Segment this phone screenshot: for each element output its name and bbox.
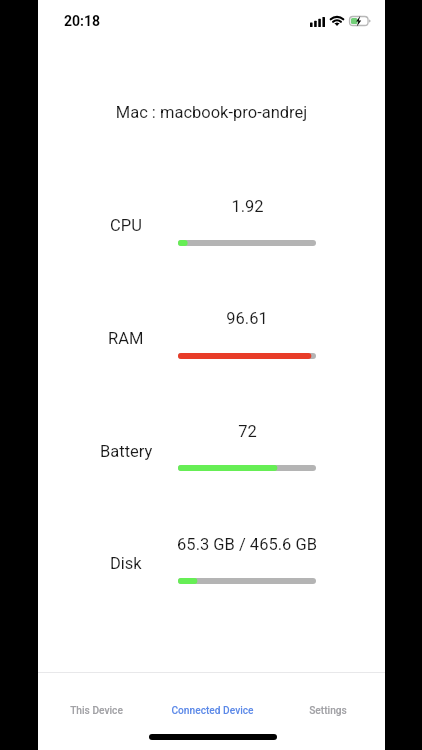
staticText: 1.92 (231, 197, 264, 216)
button[interactable] (38, 515, 385, 605)
other: Battery charging (349, 16, 371, 26)
staticText: 96.61 (226, 309, 268, 328)
other: Wi-Fi connected (330, 16, 344, 26)
staticText: 72 (238, 422, 257, 441)
staticText: This Device (70, 705, 123, 717)
staticText: CPU (110, 216, 142, 235)
button[interactable] (38, 402, 385, 492)
staticText: Settings (309, 705, 347, 717)
staticText: Mac : macbook-pro-andrej (38, 103, 385, 122)
button[interactable] (38, 177, 385, 267)
staticText: RAM (108, 329, 144, 348)
button[interactable]: Settings (270, 673, 386, 729)
button[interactable]: This Device (39, 673, 154, 729)
other: Cellular signal strength (310, 17, 325, 27)
staticText: Battery (100, 442, 153, 461)
staticText: Connected Device (171, 705, 254, 717)
staticText: 65.3 GB / 465.6 GB (177, 535, 317, 554)
staticText: 20:18 (64, 13, 101, 29)
button[interactable]: Connected Device (154, 673, 270, 729)
staticText: Disk (110, 554, 142, 573)
button[interactable] (38, 289, 385, 379)
